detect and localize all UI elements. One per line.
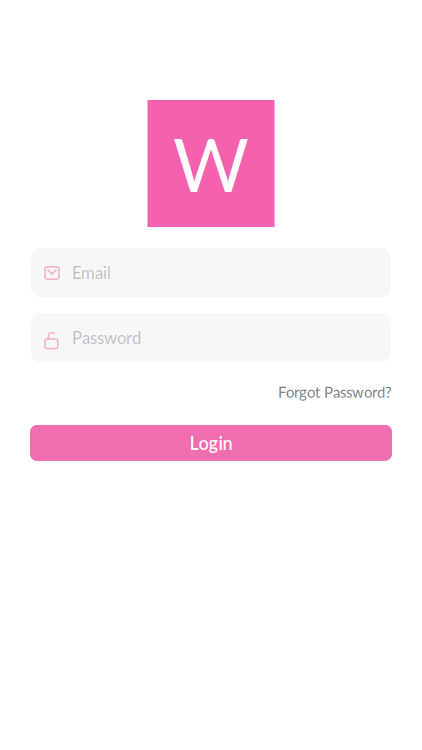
staticText: Password (72, 327, 141, 347)
staticText: W (173, 119, 249, 207)
button[interactable]: Password (31, 313, 391, 362)
staticText: Email (72, 262, 111, 282)
button[interactable]: Login (30, 425, 392, 461)
staticText: Forgot Password? (278, 383, 392, 401)
button[interactable]: Forgot Password? (278, 383, 392, 401)
button[interactable]: Email (31, 248, 391, 297)
staticText: Login (189, 432, 232, 454)
